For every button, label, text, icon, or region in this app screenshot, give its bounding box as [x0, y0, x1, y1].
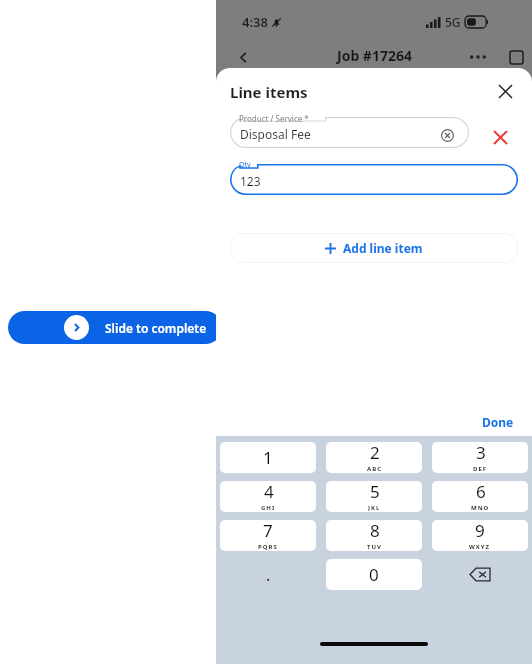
button[interactable]: 8 [326, 520, 422, 551]
staticText: Qty [239, 160, 251, 170]
button[interactable]: 7 [220, 520, 316, 551]
button[interactable]: Tabs [499, 42, 532, 72]
staticText: 5 [370, 481, 380, 503]
staticText: PQRS [258, 543, 278, 550]
staticText: GHI [261, 504, 276, 511]
button[interactable]: Clear product [436, 124, 458, 146]
staticText: 4 [264, 481, 274, 503]
staticText: 7 [263, 520, 273, 542]
button[interactable]: 9 [432, 520, 528, 551]
staticText: JKL [368, 504, 381, 511]
button[interactable]: 6 [432, 481, 528, 512]
button[interactable]: 3 [432, 442, 528, 473]
staticText: Job #17264 [337, 46, 412, 65]
staticText: DEF [473, 465, 488, 472]
staticText: WXYZ [469, 543, 491, 550]
button[interactable]: 2 [326, 442, 422, 473]
staticText: 4:38 [242, 13, 268, 31]
staticText: 2 [370, 442, 380, 464]
button[interactable]: 0 [326, 559, 422, 590]
staticText: 9 [475, 520, 485, 542]
staticText: ABC [367, 465, 382, 472]
button[interactable]: . [220, 559, 316, 590]
staticText: . [266, 564, 271, 586]
staticText: Line items [230, 82, 308, 102]
staticText: 0 [369, 563, 379, 586]
button[interactable]: Back [226, 42, 260, 72]
button[interactable]: 1 [220, 442, 316, 473]
staticText: 3 [476, 442, 486, 464]
button[interactable]: 5 [326, 481, 422, 512]
button[interactable]: Delete [432, 559, 528, 590]
staticText: Add line item [343, 240, 423, 256]
button[interactable]: Slide to complete [8, 311, 222, 344]
staticText: 123 [240, 173, 261, 189]
staticText: 6 [476, 481, 486, 503]
button[interactable]: Remove line item [487, 124, 513, 150]
button[interactable]: Add line item [230, 233, 518, 263]
button[interactable]: Done [472, 408, 524, 436]
staticText: TUV [367, 543, 382, 550]
button[interactable]: Close [490, 76, 520, 106]
button[interactable]: 4 [220, 481, 316, 512]
staticText: Done [482, 414, 514, 430]
staticText: 5G [445, 14, 461, 30]
button[interactable]: More options [461, 42, 495, 72]
staticText: Product / Service * [239, 113, 309, 124]
staticText: MNO [471, 504, 490, 511]
staticText: Disposal Fee [240, 126, 311, 142]
staticText: 8 [370, 520, 380, 542]
staticText: 1 [263, 446, 273, 469]
staticText: Slide to complete [105, 320, 207, 336]
